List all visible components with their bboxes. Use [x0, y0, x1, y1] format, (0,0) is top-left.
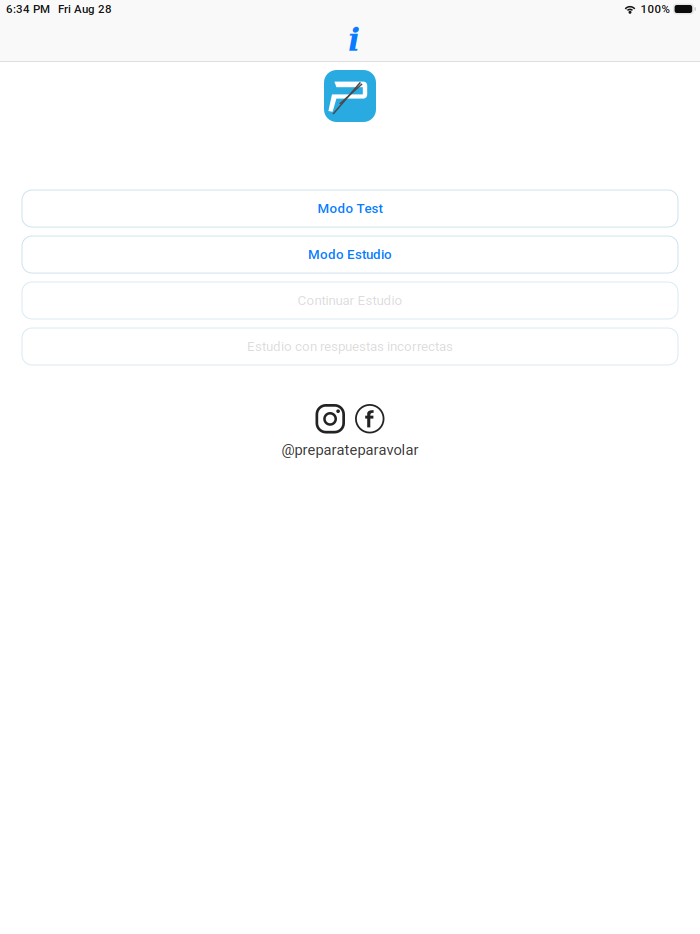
- button[interactable]: Modo Test: [22, 190, 678, 227]
- button[interactable]: Estudio con respuestas incorrectas: [22, 328, 678, 365]
- button[interactable]: Continuar Estudio: [22, 282, 678, 319]
- staticText: Continuar Estudio: [297, 293, 402, 308]
- staticText: @preparateparavolar: [281, 441, 418, 459]
- staticText: i: [348, 21, 360, 58]
- staticText: Modo Estudio: [308, 247, 392, 262]
- button[interactable]: Information: [332, 21, 376, 58]
- button[interactable]: Instagram: [315, 404, 345, 433]
- staticText: Estudio con respuestas incorrectas: [247, 339, 453, 354]
- staticText: Fri Aug 28: [58, 2, 112, 16]
- staticText: Modo Test: [317, 201, 382, 216]
- button[interactable]: Facebook: [355, 404, 384, 433]
- staticText: 100%: [640, 2, 669, 16]
- staticText: 6:34 PM: [6, 2, 50, 16]
- button[interactable]: Modo Estudio: [22, 236, 678, 273]
